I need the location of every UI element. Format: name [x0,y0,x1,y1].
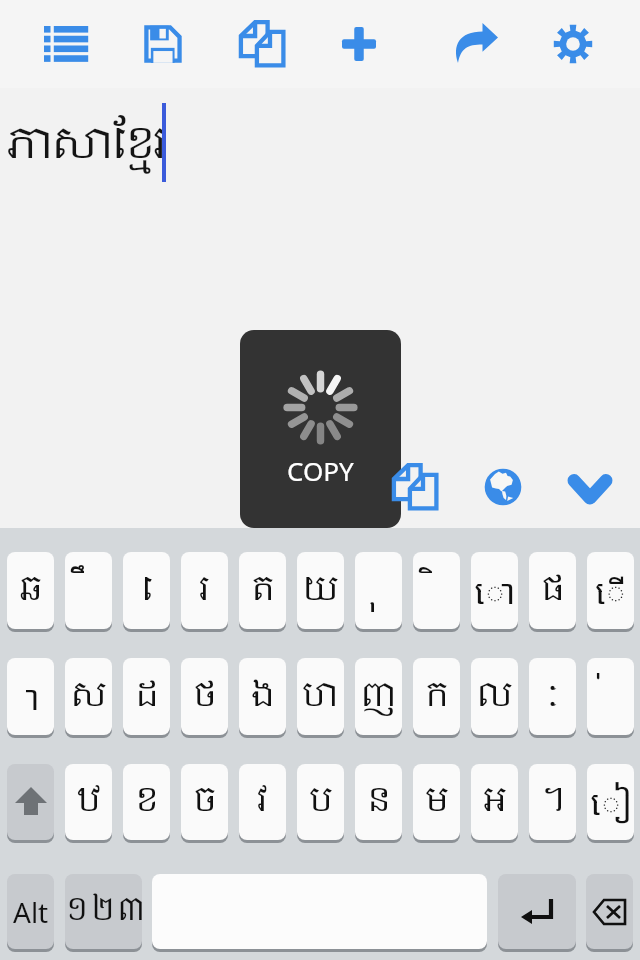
staticText: COPY [287,453,354,488]
staticText: Alt [13,893,49,931]
button[interactable]: ឋ [65,764,112,840]
staticText: ន [366,773,392,831]
button[interactable]: ខ [123,764,170,840]
button[interactable]: េ [123,552,170,629]
staticText: យ [301,562,340,620]
button[interactable]: ត [239,552,286,629]
staticText: ញ [359,668,398,726]
button[interactable]: ៈ [529,658,576,735]
staticText: វ [256,773,269,831]
button[interactable]: Shift [7,764,54,840]
button[interactable]: ថ [181,658,228,735]
button[interactable]: Copy [218,0,306,88]
button[interactable]: ញ [355,658,402,735]
staticText: ២ [90,884,116,939]
button[interactable]: Settings [529,0,617,88]
staticText: ◌ើ [595,568,627,614]
button[interactable]: អ [471,764,518,840]
staticText: ហ [301,668,340,726]
button[interactable]: Enter [498,874,576,949]
button[interactable]: ល [471,658,518,735]
button[interactable]: ផ [529,552,576,629]
staticText: ◌ោ [474,568,516,614]
button[interactable]: ន [355,764,402,840]
button[interactable]: រ [181,552,228,629]
button[interactable]: Share [432,0,520,88]
staticText: ក [424,668,450,726]
button[interactable]: Alt [7,874,54,949]
button[interactable]: Backspace [586,874,633,949]
button[interactable]: Hide keyboard [569,474,611,504]
button[interactable]: ដ [123,658,170,735]
button[interactable]: Menu [22,0,110,88]
staticText: ល [475,668,514,726]
staticText: ត [250,562,276,620]
button[interactable]: ក [413,658,460,735]
staticText: ។ [540,773,566,831]
button[interactable]: ់ [587,658,634,735]
staticText: ឋ [76,773,102,831]
button[interactable]: វ [239,764,286,840]
button[interactable]: ◌ើ [587,552,634,629]
button[interactable]: Switch language [484,468,522,506]
button[interactable]: ◌ោ [471,552,518,629]
button[interactable]: ុ [355,552,402,629]
staticText: ៈ [545,668,560,726]
staticText: ◌ៀ [590,779,632,825]
button[interactable]: ១ [65,874,142,949]
staticText: ម [424,773,450,831]
staticText: រ [198,562,211,620]
button[interactable]: ស [65,658,112,735]
staticText: ថ [192,668,218,726]
button[interactable]: ិ [413,552,460,629]
button[interactable]: ង [239,658,286,735]
staticText: ខ [134,773,160,831]
button[interactable]: ម [413,764,460,840]
button[interactable]: ។ [529,764,576,840]
button[interactable]: ប [297,764,344,840]
button[interactable]: យ [297,552,344,629]
staticText: ភាសាខ្មែរ [6,110,166,183]
button[interactable]: Save [119,0,207,88]
button[interactable]: Copy [392,464,438,510]
staticText: ឆ [18,562,44,620]
button[interactable]: ឹ [65,552,112,629]
button[interactable]: Add [315,0,403,88]
button[interactable]: ា [7,658,54,735]
staticText: ផ [540,562,566,620]
staticText: ស [69,668,108,726]
staticText: ៣ [116,884,142,939]
staticText: ច [192,773,218,831]
staticText: អ [482,773,508,831]
button[interactable]: ◌ៀ [587,764,634,840]
staticText: ង [250,668,276,726]
button[interactable]: ឆ [7,552,54,629]
staticText: ដ [134,668,160,726]
staticText: េ [140,562,153,620]
button[interactable]: ច [181,764,228,840]
staticText: ា [21,674,40,720]
button[interactable]: Space [152,874,487,949]
staticText: ប [308,773,334,831]
staticText: ១ [65,884,90,939]
button[interactable]: ហ [297,658,344,735]
